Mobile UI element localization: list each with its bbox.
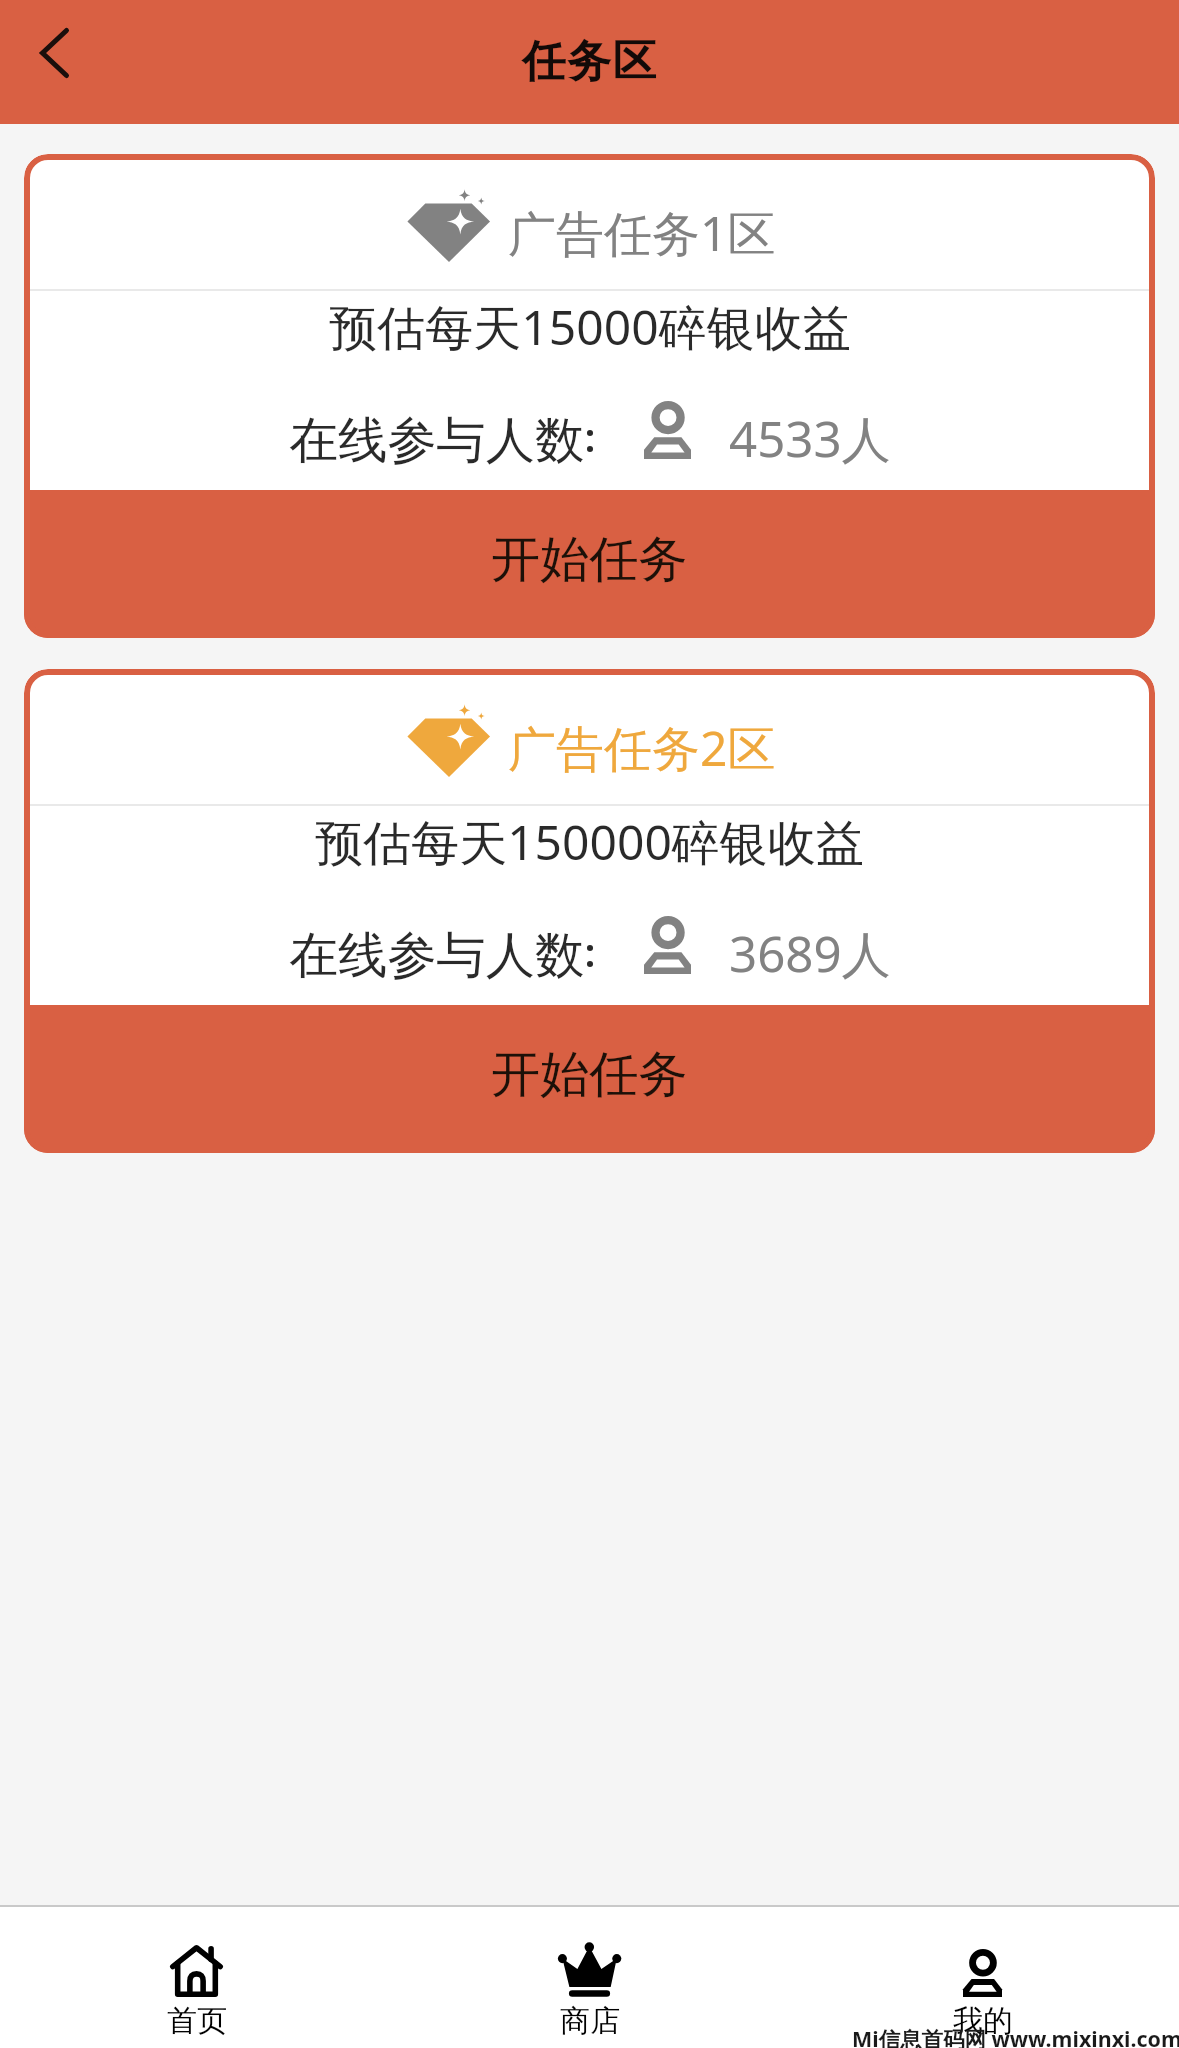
staticText: Mi信息首码网 www.mixinxi.com — [852, 2024, 1179, 2048]
button[interactable]: 开始任务 — [24, 490, 1155, 638]
staticText: 我的 — [953, 2002, 1013, 2040]
button[interactable]: Back — [0, 0, 117, 115]
button[interactable]: 首页 — [0, 1907, 393, 2040]
button[interactable]: 开始任务 — [24, 1005, 1155, 1153]
staticText: 广告任务1区 — [508, 200, 776, 266]
staticText: 商店 — [560, 2002, 620, 2040]
staticText: 首页 — [167, 2002, 227, 2040]
staticText: 任务区 — [522, 34, 658, 89]
staticText: 预估每天150000碎银收益 — [315, 809, 864, 875]
button[interactable]: 广告任务1区 — [24, 154, 1155, 638]
staticText: 开始任务 — [491, 1044, 688, 1106]
staticText: 广告任务2区 — [508, 715, 776, 781]
button[interactable]: 商店 — [393, 1907, 786, 2040]
button[interactable]: 广告任务2区 — [24, 669, 1155, 1153]
staticText: 在线参与人数 — [289, 410, 585, 472]
staticText: 预估每天15000碎银收益 — [329, 294, 851, 360]
button[interactable]: 我的 — [786, 1907, 1179, 2040]
staticText: 4533人 — [729, 404, 891, 471]
staticText: 在线参与人数 — [289, 925, 585, 987]
staticText: 开始任务 — [491, 529, 688, 591]
staticText: 3689人 — [729, 919, 891, 986]
